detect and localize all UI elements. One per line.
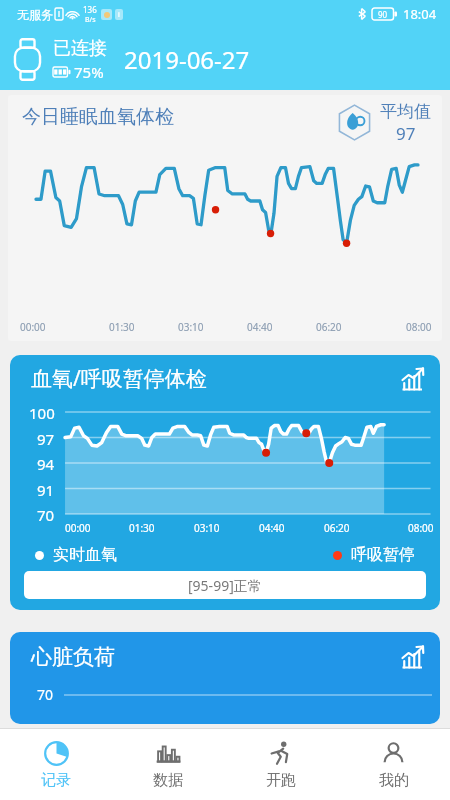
staticText: 心脏负荷 [31, 644, 115, 670]
staticText: 06:20 [324, 521, 350, 535]
staticText: 呼吸暂停 [351, 545, 415, 565]
staticText: 01:30 [109, 320, 135, 334]
staticText: 今日睡眠血氧体检 [22, 105, 174, 129]
staticText: 我的 [379, 771, 409, 790]
staticText: 08:00 [408, 521, 434, 535]
staticText: 00:00 [65, 521, 91, 535]
staticText: 开跑 [266, 771, 296, 790]
staticText: 03:10 [194, 521, 220, 535]
button[interactable]: 数据 [112, 729, 224, 800]
button[interactable]: [95-99]正常 [24, 571, 426, 599]
staticText: 08:00 [406, 320, 432, 334]
staticText: 97 [37, 429, 55, 449]
staticText: 2019-06-27 [124, 43, 250, 76]
staticText: 70 [37, 685, 54, 704]
staticText: 已连接 [53, 37, 107, 60]
staticText: 数据 [153, 771, 183, 790]
staticText: 18:04 [403, 5, 437, 23]
staticText: 01:30 [129, 521, 155, 535]
staticText: 04:40 [247, 320, 273, 334]
button[interactable]: 我的 [337, 729, 450, 800]
button[interactable]: 开跑 [224, 729, 337, 800]
staticText: 97 [396, 122, 416, 145]
button[interactable]: 心脏负荷 [10, 632, 440, 724]
staticText: 00:00 [20, 320, 46, 334]
staticText: 70 [37, 505, 55, 525]
staticText: 90 [378, 9, 388, 20]
staticText: 实时血氧 [53, 545, 117, 565]
staticText: [95-99]正常 [188, 576, 262, 595]
button[interactable]: 查看趋势图 [399, 365, 427, 393]
staticText: 91 [37, 480, 55, 500]
button[interactable]: 记录 [0, 729, 112, 800]
staticText: i [118, 10, 120, 20]
staticText: 无服务 [17, 7, 53, 22]
staticText: 血氧/呼吸暂停体检 [31, 364, 207, 393]
button[interactable]: 查看趋势图 [399, 643, 427, 671]
staticText: 04:40 [259, 521, 285, 535]
staticText: 06:20 [316, 320, 342, 334]
staticText: 记录 [41, 771, 71, 790]
staticText: B/s [85, 15, 96, 25]
staticText: 94 [37, 454, 55, 474]
staticText: 平均值 [380, 101, 431, 122]
staticText: 100 [29, 403, 55, 423]
staticText: 03:10 [178, 320, 204, 334]
staticText: 75% [74, 62, 104, 82]
button[interactable]: 血氧/呼吸暂停体检 [10, 355, 440, 610]
button[interactable]: 今日睡眠血氧体检 [8, 95, 442, 341]
staticText: 136 [83, 4, 97, 15]
